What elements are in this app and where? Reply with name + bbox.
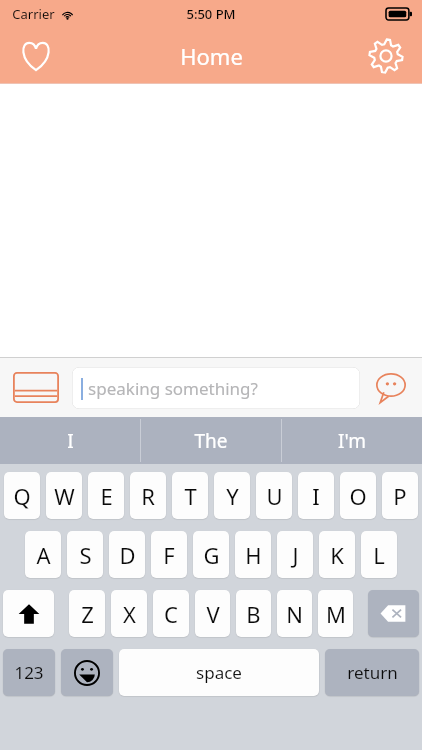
staticText: X: [123, 599, 136, 629]
staticText: M: [326, 599, 346, 629]
button[interactable]: Settings: [358, 28, 414, 84]
button[interactable]: Cards: [0, 358, 72, 417]
staticText: I: [67, 428, 74, 454]
staticText: 5:50 PM: [186, 5, 236, 23]
button[interactable]: Z: [69, 590, 105, 637]
button[interactable]: J: [277, 531, 313, 578]
button[interactable]: space: [119, 649, 319, 696]
staticText: speaking something?: [88, 377, 258, 400]
staticText: Q: [13, 481, 31, 511]
button[interactable]: I: [0, 417, 140, 464]
button[interactable]: H: [235, 531, 271, 578]
button[interactable]: L: [361, 531, 397, 578]
button[interactable]: K: [319, 531, 355, 578]
staticText: J: [292, 540, 299, 570]
button[interactable]: Messages: [360, 358, 422, 417]
button[interactable]: S: [67, 531, 103, 578]
staticText: U: [266, 481, 283, 511]
button[interactable]: M: [318, 590, 353, 637]
button[interactable]: B: [236, 590, 271, 637]
staticText: Carrier: [12, 5, 55, 23]
staticText: 123: [14, 661, 44, 684]
button[interactable]: X: [111, 590, 147, 637]
staticText: V: [206, 599, 220, 629]
staticText: S: [79, 540, 92, 570]
button[interactable]: I: [298, 472, 334, 519]
staticText: Y: [226, 481, 239, 511]
staticText: return: [347, 661, 398, 684]
button[interactable]: Shift: [3, 590, 54, 637]
staticText: E: [100, 481, 113, 511]
staticText: A: [36, 540, 51, 570]
staticText: G: [203, 540, 220, 570]
staticText: I: [312, 481, 320, 511]
staticText: P: [393, 481, 407, 511]
staticText: space: [196, 661, 242, 684]
button[interactable]: P: [382, 472, 418, 519]
button[interactable]: W: [46, 472, 82, 519]
button[interactable]: I'm: [282, 417, 422, 464]
staticText: L: [373, 540, 385, 570]
staticText: Home: [180, 41, 243, 71]
staticText: T: [184, 481, 197, 511]
button[interactable]: Q: [4, 472, 40, 519]
button[interactable]: U: [256, 472, 292, 519]
staticText: D: [119, 540, 136, 570]
button[interactable]: V: [195, 590, 230, 637]
button[interactable]: Backspace: [368, 590, 419, 637]
button[interactable]: T: [172, 472, 208, 519]
staticText: H: [245, 540, 262, 570]
staticText: F: [163, 540, 175, 570]
button[interactable]: C: [153, 590, 189, 637]
button[interactable]: return: [325, 649, 419, 696]
staticText: Z: [81, 599, 94, 629]
button[interactable]: R: [130, 472, 166, 519]
staticText: B: [246, 599, 261, 629]
button[interactable]: D: [109, 531, 145, 578]
button[interactable]: G: [193, 531, 229, 578]
button[interactable]: E: [88, 472, 124, 519]
button[interactable]: F: [151, 531, 187, 578]
staticText: N: [286, 599, 303, 629]
staticText: O: [349, 481, 367, 511]
button[interactable]: N: [277, 590, 312, 637]
staticText: K: [330, 540, 344, 570]
button[interactable]: Y: [214, 472, 250, 519]
button[interactable]: 123: [3, 649, 55, 696]
staticText: The: [194, 428, 228, 454]
staticText: R: [141, 481, 155, 511]
button[interactable]: Favorites: [8, 28, 64, 84]
button[interactable]: Emoji: [61, 649, 113, 696]
button[interactable]: The: [141, 417, 281, 464]
button[interactable]: A: [25, 531, 61, 578]
button[interactable]: speaking something?: [72, 367, 360, 409]
button[interactable]: O: [340, 472, 376, 519]
staticText: I'm: [338, 428, 366, 454]
staticText: W: [54, 481, 75, 511]
staticText: C: [164, 599, 178, 629]
